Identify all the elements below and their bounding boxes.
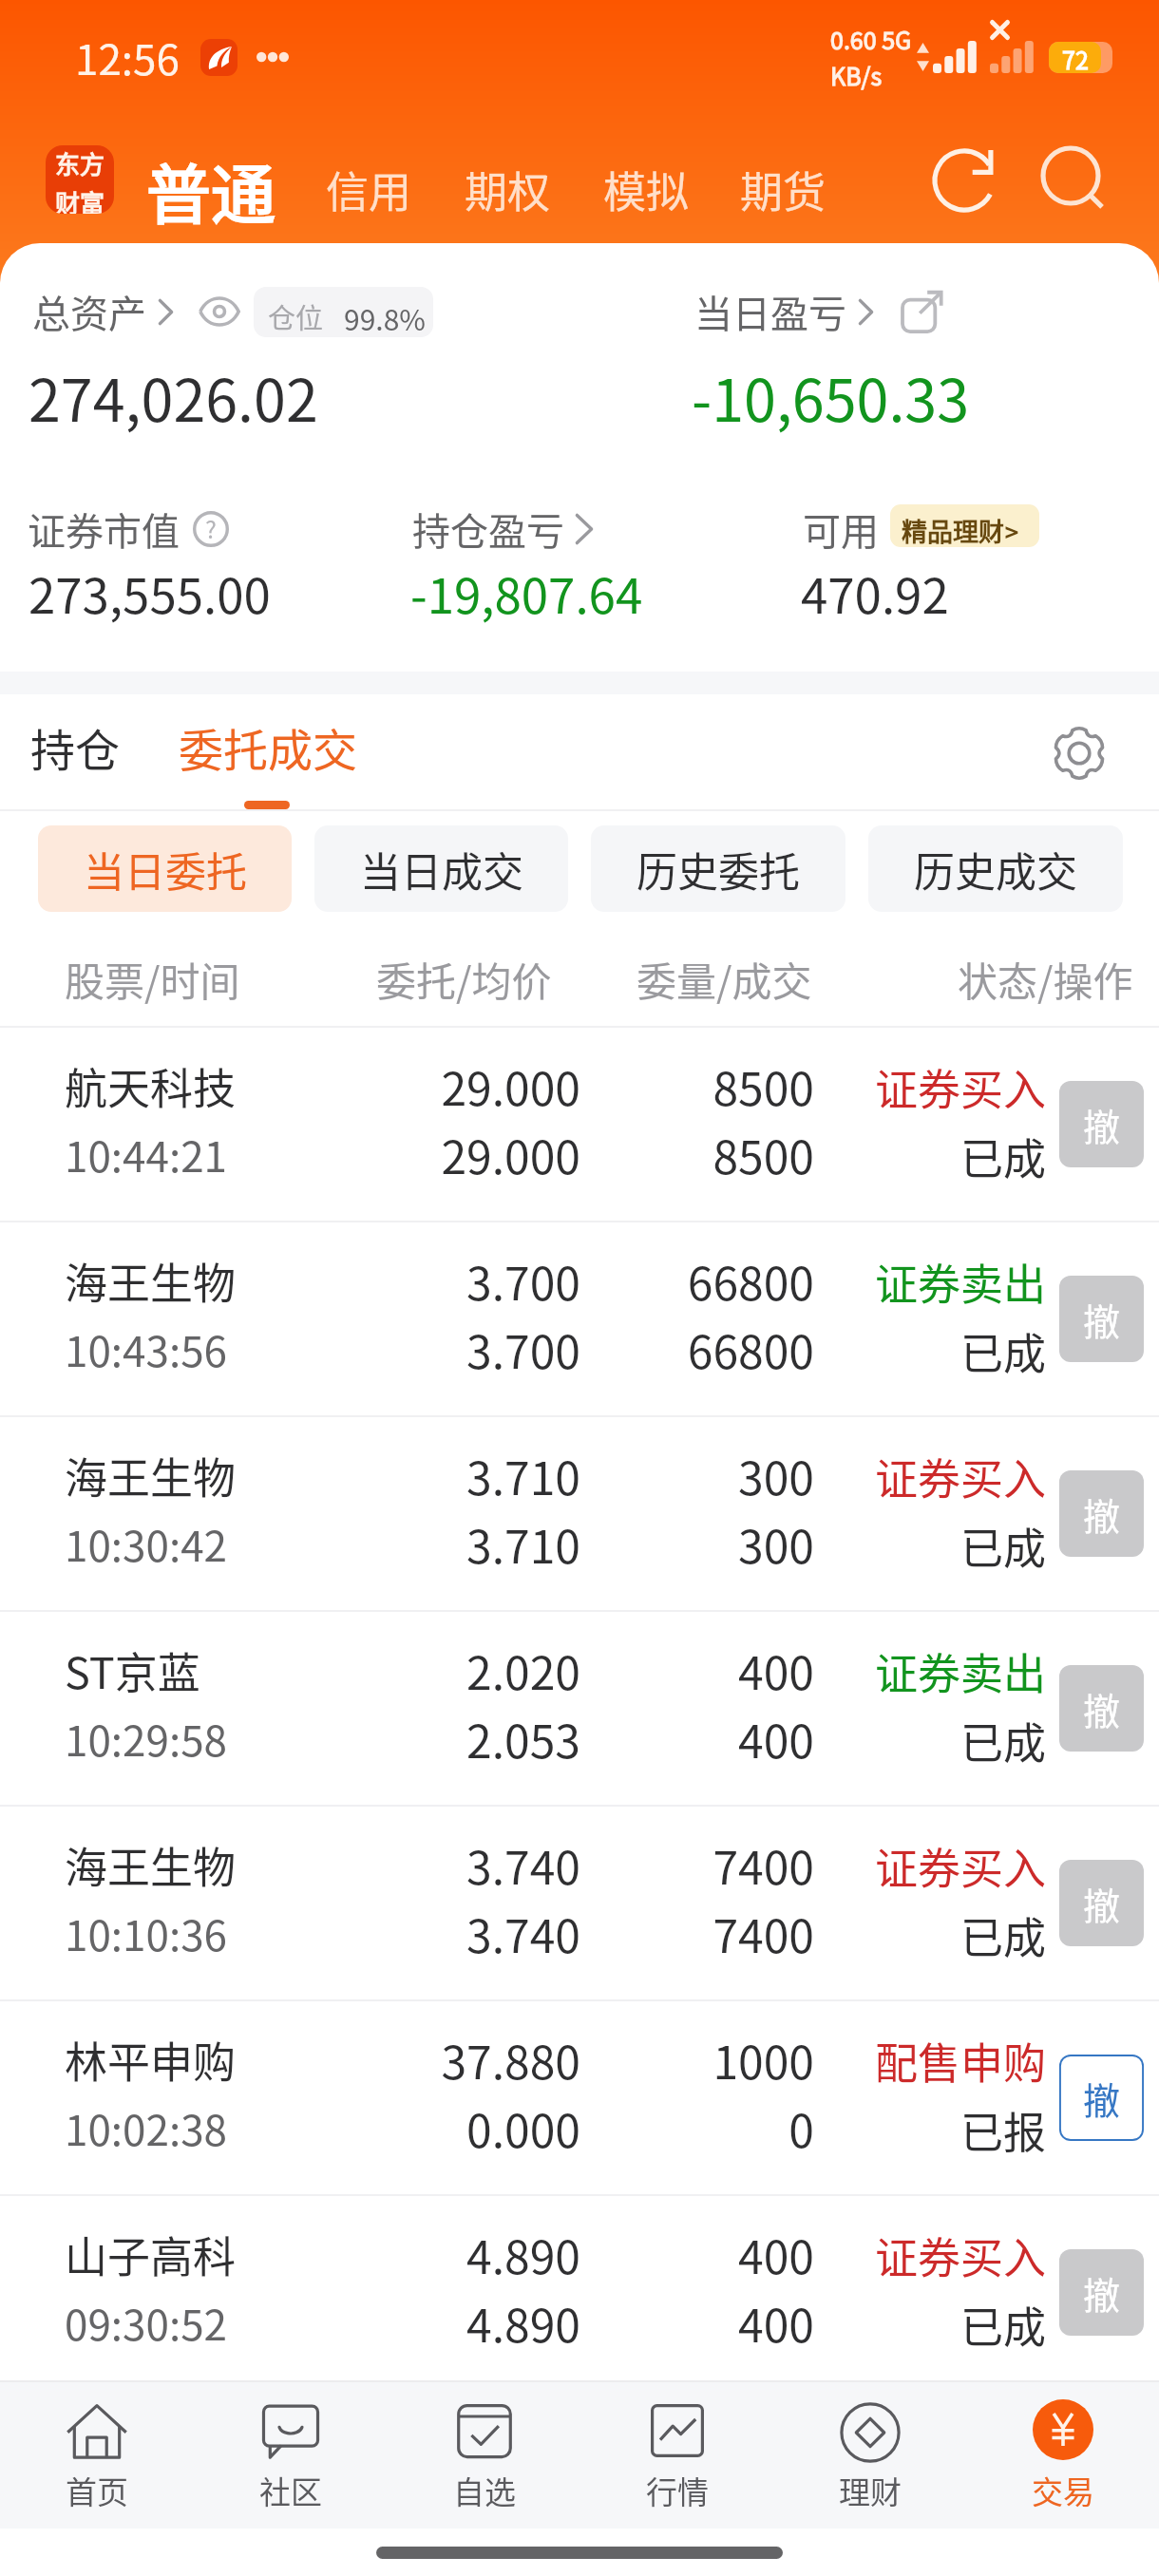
staticText: 4.890 <box>237 2289 580 2356</box>
button[interactable]: Cancel order <box>1059 1470 1144 1557</box>
staticText: 66800 <box>613 1247 814 1314</box>
staticText: 09:30:52 <box>65 2292 227 2353</box>
staticText: 400 <box>613 1637 814 1703</box>
button[interactable]: Cancel order <box>1059 1665 1144 1752</box>
staticText: 7400 <box>613 1900 814 1966</box>
staticText: 已成 <box>815 2294 1046 2356</box>
button[interactable]: Cancel order <box>1059 2055 1144 2141</box>
staticText: 撤 <box>1083 1293 1121 1346</box>
staticText: 8500 <box>613 1121 814 1187</box>
staticText: ? <box>205 511 217 545</box>
staticText: 10:10:36 <box>65 1903 227 1963</box>
button[interactable]: 精品理财 <box>890 504 1039 547</box>
button[interactable]: 期权 <box>465 159 551 220</box>
staticText: 3.740 <box>237 1831 580 1898</box>
button[interactable]: 海王生物 <box>0 1417 1159 1612</box>
staticText: 海王生物 <box>65 1834 237 1896</box>
button[interactable]: 当日成交 <box>314 825 568 912</box>
button[interactable]: 委托成交 <box>179 714 357 779</box>
button[interactable]: Cancel order <box>1059 1081 1144 1167</box>
staticText: 已成 <box>815 1904 1046 1966</box>
staticText: 委量/成交 <box>636 950 812 1008</box>
staticText: 山子高科 <box>65 2224 237 2285</box>
staticText: 撤 <box>1083 1877 1121 1930</box>
staticText: 66800 <box>613 1316 814 1382</box>
button[interactable]: 当日盈亏 <box>694 284 942 339</box>
button[interactable]: 海王生物 <box>0 1807 1159 2001</box>
button[interactable]: 历史成交 <box>868 825 1123 912</box>
staticText: 委托/均价 <box>376 950 552 1008</box>
staticText: 历史成交 <box>914 840 1077 899</box>
staticText: 证券买入 <box>815 1835 1046 1897</box>
staticText: 证券买入 <box>815 2225 1046 2286</box>
staticText: 72 <box>1062 42 1089 73</box>
staticText: 历史委托 <box>636 840 800 899</box>
staticText: KB/s <box>830 58 883 92</box>
button[interactable]: 历史委托 <box>591 825 845 912</box>
staticText: 29.000 <box>237 1052 580 1119</box>
staticText: 航天科技 <box>65 1055 237 1117</box>
button[interactable]: 首页 <box>0 2382 194 2513</box>
button[interactable]: East Money <box>46 145 114 214</box>
staticText: 3.710 <box>237 1442 580 1508</box>
staticText: 已成 <box>815 1710 1046 1771</box>
button[interactable]: 交易 <box>966 2382 1159 2513</box>
button[interactable]: Search <box>1036 141 1114 218</box>
staticText: -10,650.33 <box>692 354 970 438</box>
staticText: 10:29:58 <box>65 1708 227 1769</box>
staticText: 1000 <box>613 2026 814 2093</box>
button[interactable]: 自选 <box>388 2382 580 2513</box>
staticText: 300 <box>613 1442 814 1508</box>
button[interactable]: 期货 <box>740 159 826 220</box>
button[interactable]: 信用 <box>326 159 412 220</box>
staticText: 470.92 <box>801 558 949 628</box>
staticText: 证券买入 <box>815 1446 1046 1507</box>
button[interactable]: 仓位 <box>254 287 433 337</box>
staticText: 8500 <box>613 1052 814 1119</box>
button[interactable]: 林平申购 <box>0 2001 1159 2196</box>
staticText: 证券买入 <box>815 1056 1046 1118</box>
button[interactable]: Cancel order <box>1059 2249 1144 2336</box>
staticText: 精品理财 <box>902 512 1004 547</box>
staticText: 37.880 <box>237 2026 580 2093</box>
button[interactable]: 理财 <box>773 2382 966 2513</box>
button[interactable]: Refresh <box>925 142 1003 219</box>
staticText: 持仓盈亏 <box>412 502 564 557</box>
button[interactable]: 社区 <box>194 2382 388 2513</box>
staticText: ST京蓝 <box>65 1639 200 1701</box>
button[interactable]: Cancel order <box>1059 1860 1144 1946</box>
staticText: 10:43:56 <box>65 1318 227 1379</box>
button[interactable]: 模拟 <box>603 159 690 220</box>
button[interactable]: 海王生物 <box>0 1222 1159 1417</box>
staticText: 行情 <box>646 2468 709 2513</box>
button[interactable]: 持仓 <box>30 714 120 779</box>
staticText: 总资产 <box>32 284 146 339</box>
button[interactable]: 普通 <box>146 143 276 237</box>
staticText: 已成 <box>815 1126 1046 1187</box>
button[interactable]: 行情 <box>580 2382 773 2513</box>
staticText: 10:30:42 <box>65 1513 227 1574</box>
staticText: 29.000 <box>237 1121 580 1187</box>
staticText: 3.700 <box>237 1247 580 1314</box>
button[interactable]: 总资产 <box>32 284 240 339</box>
staticText: 10:44:21 <box>65 1124 227 1184</box>
staticText: 仓位 <box>268 296 324 336</box>
staticText: 已成 <box>815 1515 1046 1577</box>
button[interactable]: Settings <box>1045 719 1113 787</box>
staticText: 财富 <box>55 184 105 214</box>
staticText: > <box>1005 514 1018 547</box>
staticText: 10:02:38 <box>65 2097 227 2158</box>
staticText: 撤 <box>1083 2266 1121 2320</box>
button[interactable]: 当日委托 <box>38 825 292 912</box>
staticText: 2.053 <box>237 1705 580 1771</box>
button[interactable]: ST京蓝 <box>0 1612 1159 1807</box>
staticText: 400 <box>613 1705 814 1771</box>
button[interactable]: Cancel order <box>1059 1276 1144 1362</box>
staticText: 林平申购 <box>65 2029 237 2091</box>
button[interactable]: 持仓盈亏 <box>412 502 595 557</box>
staticText: 配售申购 <box>815 2030 1046 2092</box>
button[interactable]: 山子高科 <box>0 2196 1159 2391</box>
staticText: 4.890 <box>237 2221 580 2287</box>
staticText: 东方 <box>55 145 105 181</box>
button[interactable]: 航天科技 <box>0 1028 1159 1222</box>
